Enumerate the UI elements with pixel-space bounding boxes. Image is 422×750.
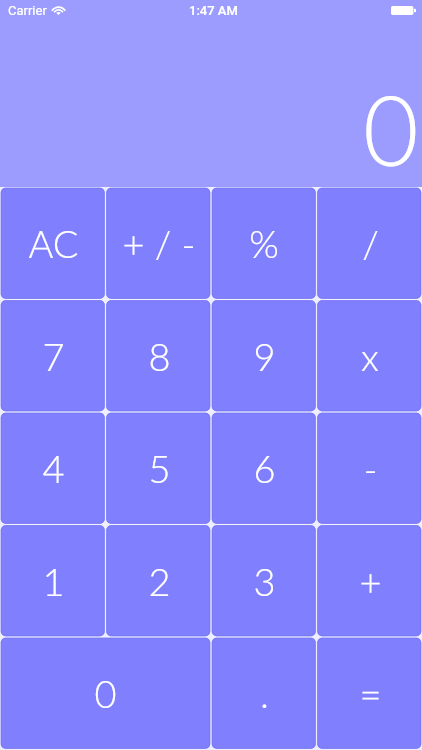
button[interactable]: 0 [0,637,211,750]
button[interactable]: % [211,187,317,300]
button[interactable]: + / - [106,187,212,300]
button[interactable]: 4 [0,412,106,525]
other: Battery full [391,6,416,15]
staticText: AC [28,220,79,266]
staticText: 0 [363,71,419,186]
button[interactable]: / [317,187,422,300]
staticText: 1 [42,558,65,604]
staticText: 8 [148,333,171,379]
staticText: 6 [253,445,276,491]
staticText: 7 [42,333,65,379]
button[interactable]: 2 [106,525,212,638]
staticText: + / - [122,220,196,266]
button[interactable]: 1 [0,525,106,638]
staticText: . [260,670,269,716]
staticText: + [359,558,382,604]
staticText: 2 [148,558,171,604]
staticText: 3 [253,558,276,604]
other: Wi-Fi signal [52,6,65,15]
button[interactable]: 7 [0,300,106,413]
button[interactable]: 5 [106,412,212,525]
staticText: = [359,670,382,716]
staticText: x [361,333,379,379]
button[interactable]: 6 [211,412,317,525]
button[interactable]: = [317,637,422,750]
staticText: - [363,445,378,491]
staticText: / [362,220,379,266]
button[interactable]: - [317,412,422,525]
staticText: % [249,220,279,266]
staticText: Carrier [8,3,47,18]
staticText: 0 [94,670,117,716]
button[interactable]: AC [0,187,106,300]
staticText: 9 [253,333,276,379]
button[interactable]: + [317,525,422,638]
button[interactable]: 8 [106,300,212,413]
button[interactable]: 3 [211,525,317,638]
staticText: 1:47 AM [189,3,238,18]
button[interactable]: . [211,637,317,750]
staticText: 5 [148,445,171,491]
button[interactable]: 9 [211,300,317,413]
staticText: 4 [42,445,65,491]
button[interactable]: x [317,300,422,413]
